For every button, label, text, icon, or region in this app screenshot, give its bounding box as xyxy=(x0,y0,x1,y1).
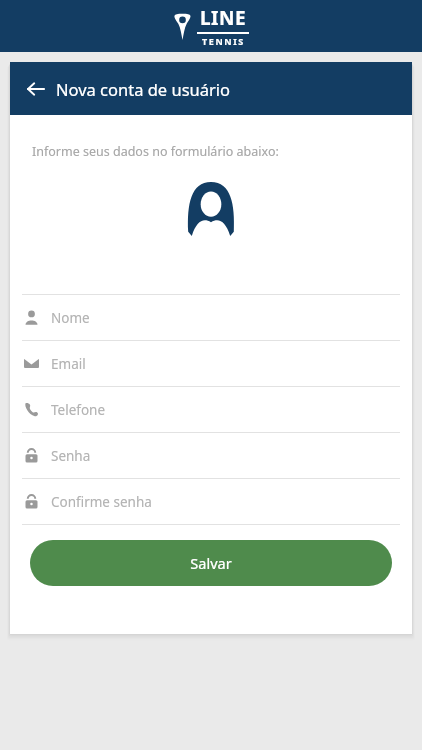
button[interactable]: Nome xyxy=(10,295,412,340)
staticText: LINE xyxy=(200,5,247,31)
button[interactable]: Telefone xyxy=(10,387,412,432)
button[interactable]: Email xyxy=(10,341,412,386)
button[interactable]: Confirme senha xyxy=(10,479,412,524)
staticText: Senha xyxy=(51,447,91,465)
staticText: Email xyxy=(51,355,86,373)
staticText: Nome xyxy=(51,309,90,327)
button[interactable]: Salvar xyxy=(30,540,392,586)
staticText: TENNIS xyxy=(202,35,245,47)
staticText: Nova conta de usuário xyxy=(56,78,231,100)
button[interactable]: Senha xyxy=(10,433,412,478)
staticText: Telefone xyxy=(51,401,106,419)
staticText: Salvar xyxy=(190,553,232,573)
staticText: Informe seus dados no formulário abaixo: xyxy=(32,143,279,160)
staticText: Confirme senha xyxy=(51,493,152,511)
button[interactable]: Voltar xyxy=(16,69,56,109)
